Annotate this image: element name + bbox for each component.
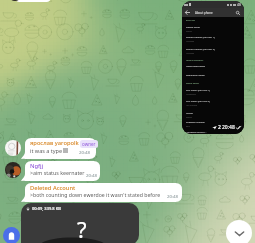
staticText: 2: [218, 124, 221, 131]
staticText: ?: [77, 214, 87, 243]
staticText: Phone number (SIM slot 1): [186, 36, 215, 39]
staticText: Regulatory labels: [186, 74, 205, 77]
staticText: Legal & regulatory: [186, 59, 204, 62]
staticText: About phone: [195, 11, 213, 15]
staticText: Unknown: [186, 52, 195, 54]
staticText: 20:48: [86, 172, 97, 178]
staticText: Hardware inform...: [186, 131, 207, 134]
staticText: Device details: [186, 82, 199, 85]
staticText: Model: [186, 112, 193, 115]
staticText: 20:48: [222, 124, 235, 131]
staticText: Device name: [186, 26, 200, 29]
staticText: Basic info: [186, 19, 196, 22]
staticText: ярослав yaropolk: [30, 139, 79, 147]
staticText: Legal information: [186, 65, 206, 68]
staticText: xxxx23: [186, 116, 192, 118]
staticText: 48: [237, 2, 242, 7]
button[interactable]: Deleted Account: [21, 183, 182, 202]
staticText: beta: [186, 125, 190, 127]
button[interactable]: Ngfjj: [21, 161, 100, 181]
button[interactable]: 00:09, 339.8 KB: [21, 203, 139, 243]
staticText: Software channel: [186, 121, 205, 124]
staticText: >both counting down ewerdoe it wasn't st…: [30, 191, 161, 198]
staticText: Deleted Account: [30, 184, 76, 192]
button[interactable]: ярослав yaropolk: [21, 138, 96, 159]
staticText: Phone number (SIM slot 2): [186, 48, 215, 51]
button[interactable]: Photo: [182, 1, 244, 134]
staticText: it was a type: [30, 147, 63, 154]
staticText: Not available: [186, 104, 198, 106]
staticText: Unknown: [186, 40, 195, 42]
staticText: SIM status (SIM slot 2): [186, 100, 210, 103]
staticText: SIM status (SIM slot 1): [186, 89, 210, 92]
staticText: xxxx45: [186, 30, 192, 32]
staticText: 00:09, 339.8 KB: [32, 206, 61, 211]
staticText: 20:48: [79, 149, 90, 155]
staticText: Unavailable: [186, 93, 196, 95]
staticText: 20:48: [167, 193, 178, 199]
staticText: owner: [82, 141, 96, 147]
staticText: Ngfjj: [30, 162, 44, 170]
staticText: >aim status keernater: [30, 169, 85, 176]
button[interactable]: Scroll to bottom: [226, 220, 252, 243]
